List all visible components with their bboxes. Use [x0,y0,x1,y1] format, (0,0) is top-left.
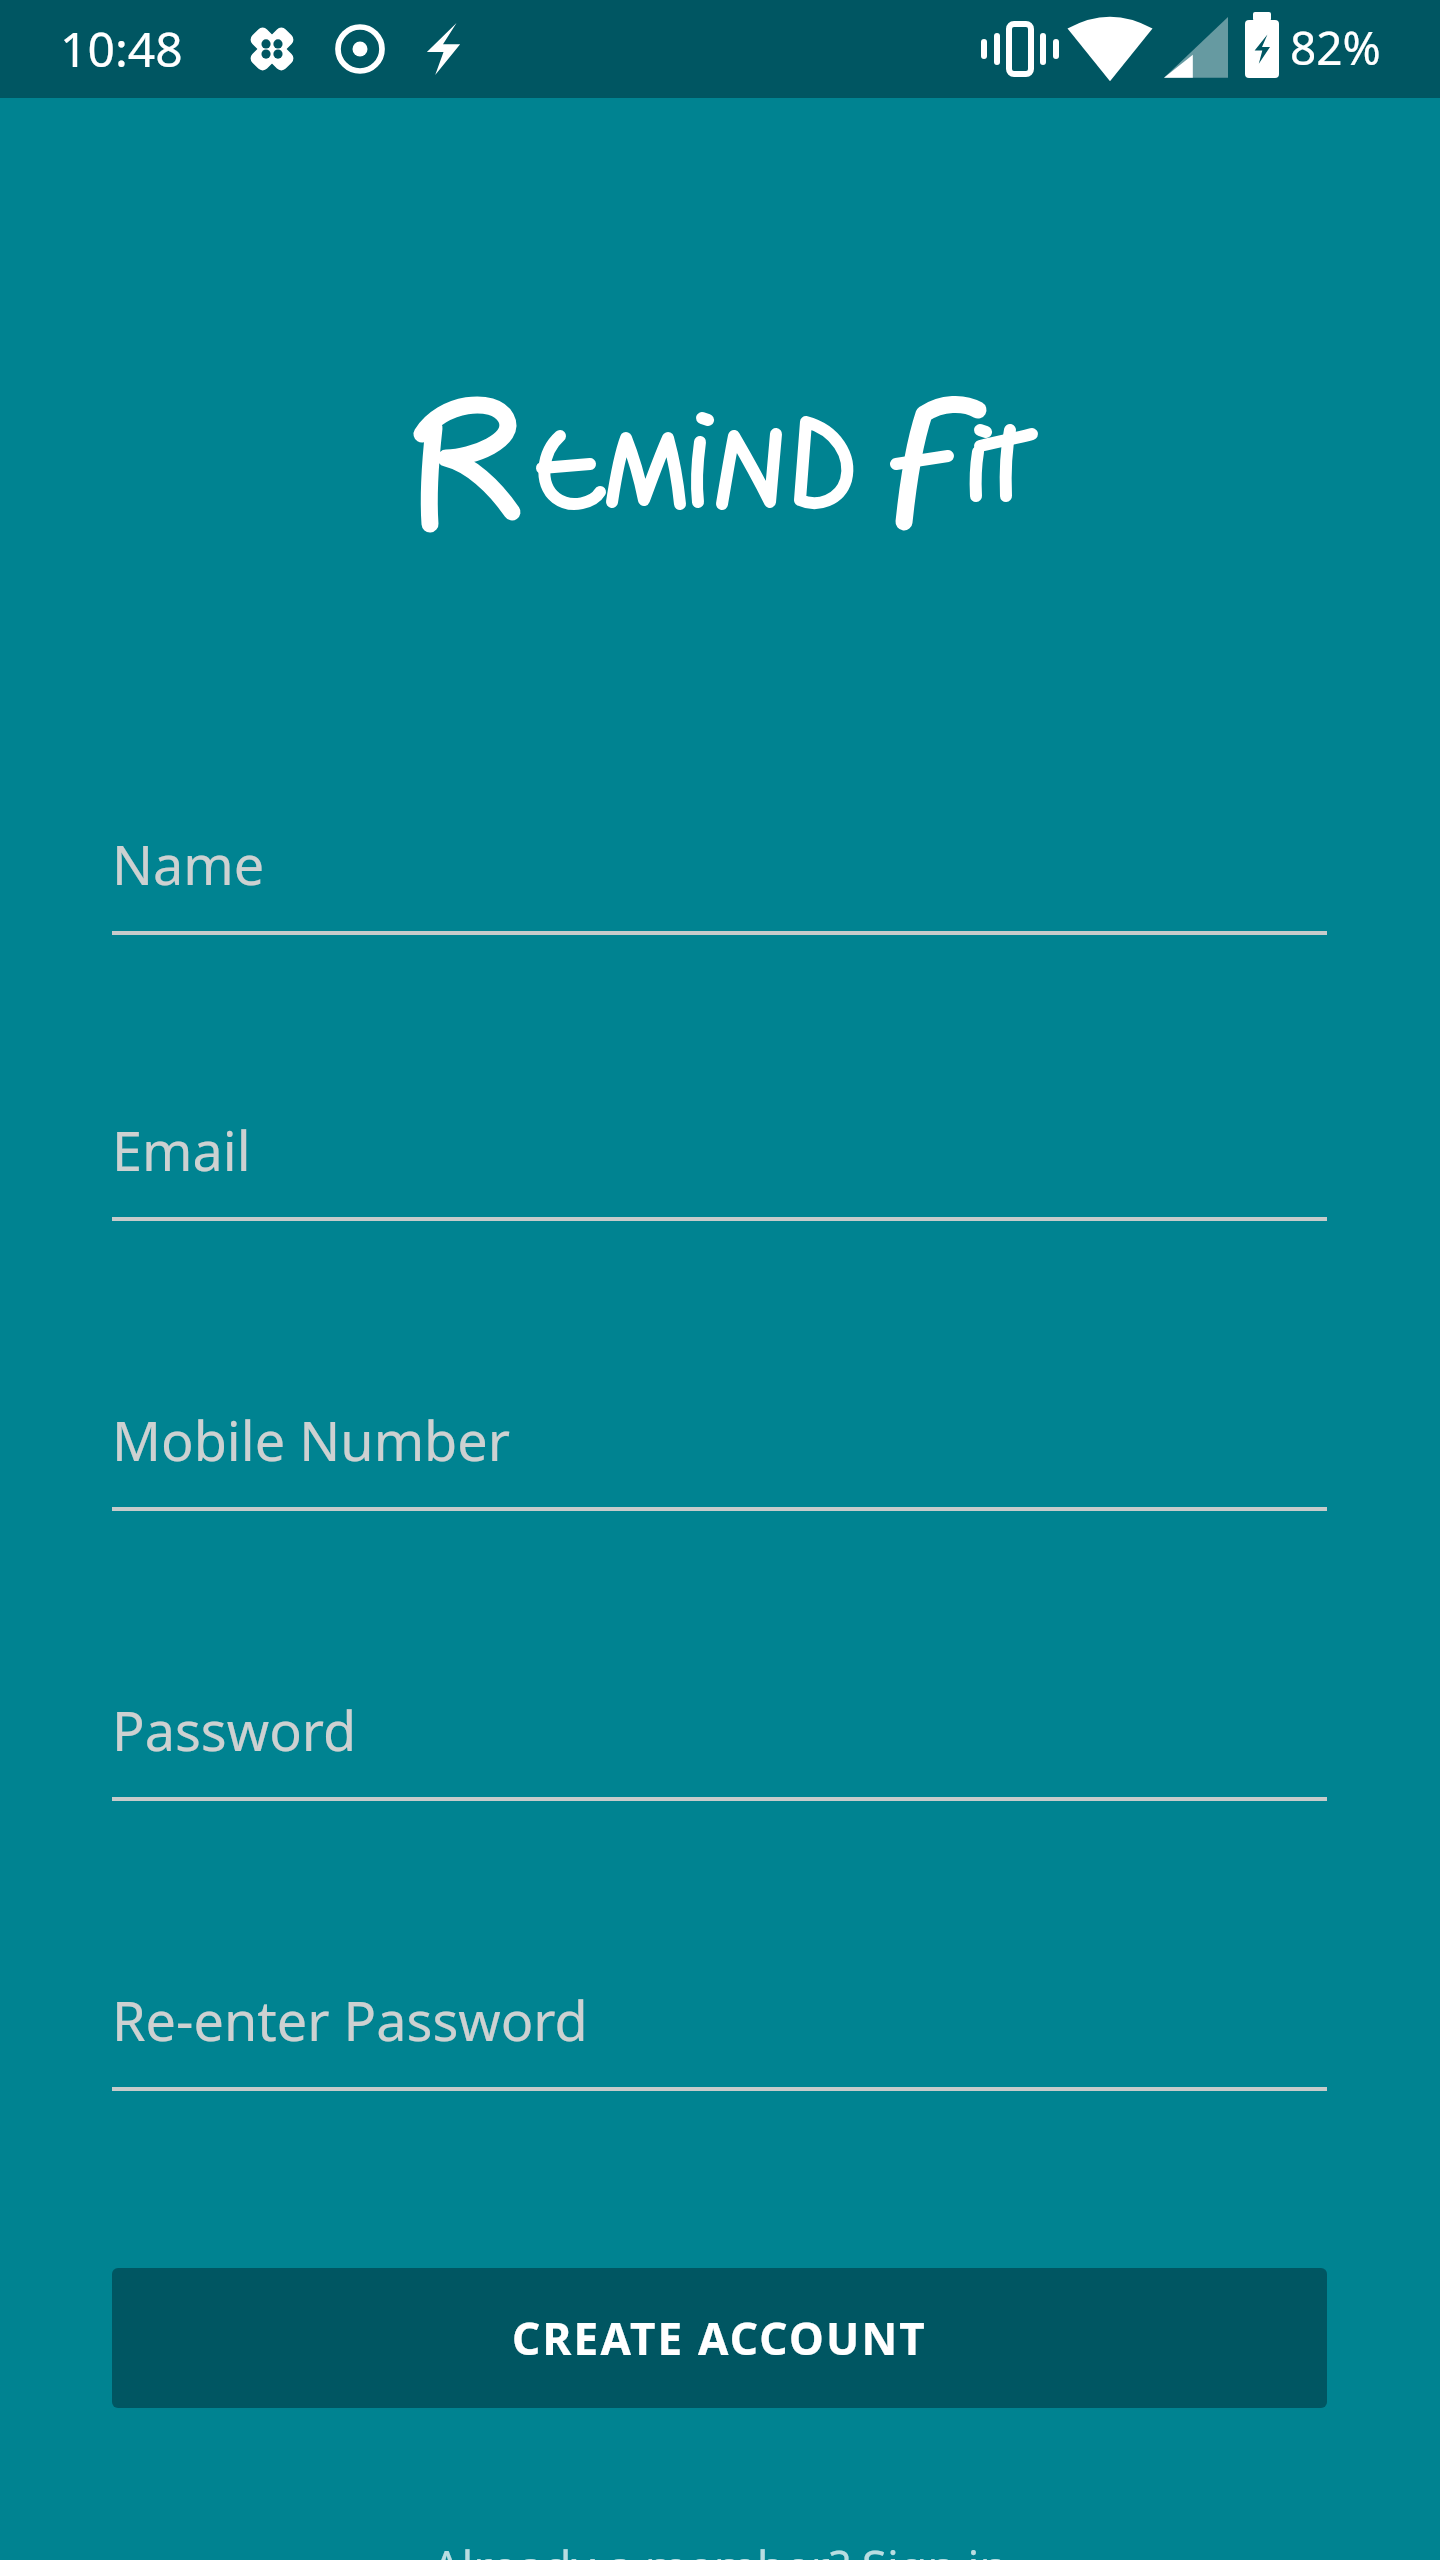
staticText: Name [112,827,265,901]
button[interactable]: Mobile Number [112,1403,1327,1511]
staticText: CREATE ACCOUNT [512,2308,927,2368]
button[interactable]: Already a member? Sign in [112,2500,1327,2560]
button[interactable]: Email [112,1113,1327,1221]
button[interactable]: CREATE ACCOUNT [112,2268,1327,2408]
staticText: Re-enter Password [112,1983,588,2057]
staticText: Password [112,1693,357,1767]
button[interactable]: Password [112,1693,1327,1801]
staticText: Already a member? Sign in [432,2535,1008,2560]
button[interactable]: Name [112,827,1327,935]
staticText: 10:48 [60,16,183,81]
button[interactable]: Re-enter Password [112,1983,1327,2091]
staticText: Mobile Number [112,1403,511,1477]
staticText: Email [112,1113,251,1187]
staticText: 82% [1290,16,1381,79]
